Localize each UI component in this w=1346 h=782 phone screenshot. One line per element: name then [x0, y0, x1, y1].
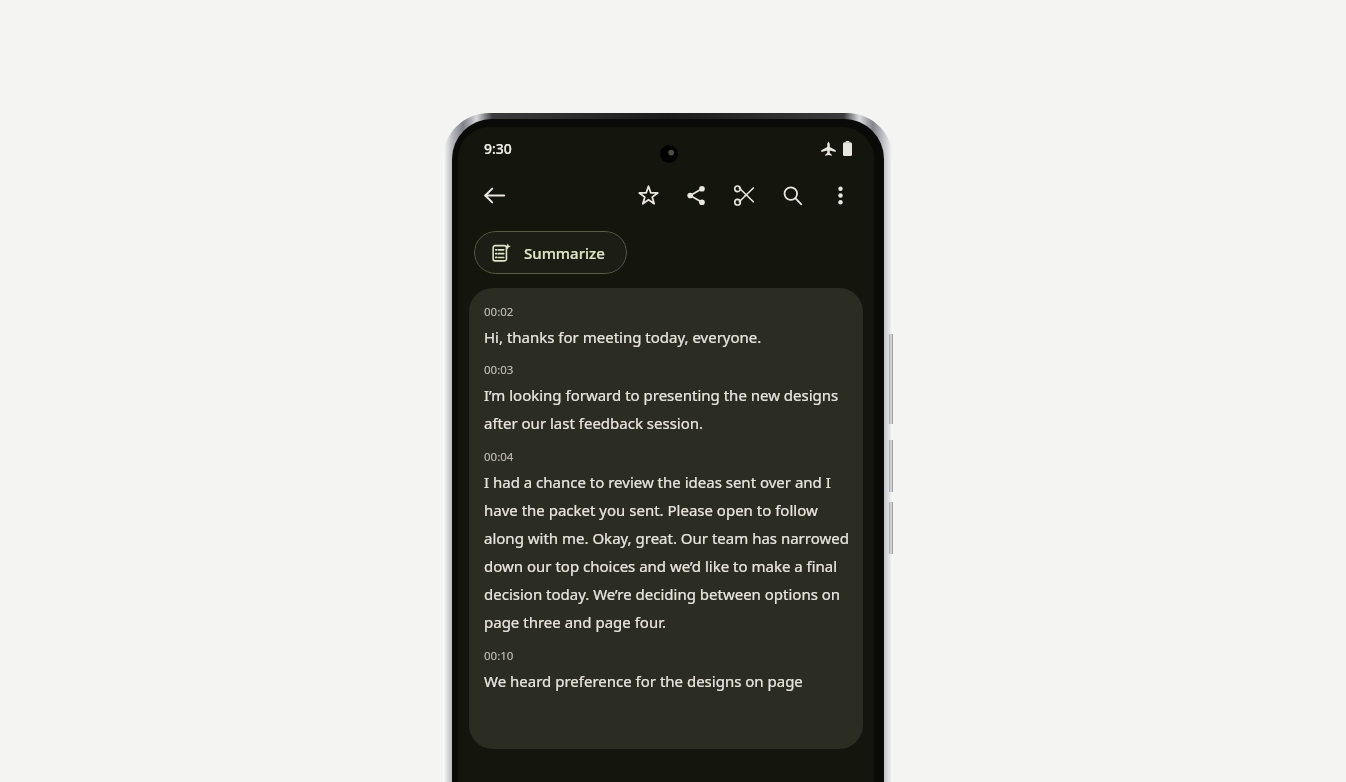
staticText: 00:10	[484, 648, 514, 664]
button[interactable]: Search	[768, 171, 816, 219]
staticText: 00:04	[484, 449, 514, 465]
button[interactable]: 00:02	[469, 288, 863, 749]
staticText: I had a chance to review the ideas sent …	[484, 472, 849, 633]
staticText: Hi, thanks for meeting today, everyone.	[484, 327, 762, 347]
staticText: We heard preference for the designs on p…	[484, 671, 803, 691]
staticText: Summarize	[524, 243, 605, 263]
staticText: I’m looking forward to presenting the ne…	[484, 385, 849, 434]
button[interactable]: Back	[472, 173, 516, 217]
staticText: 00:02	[484, 304, 514, 320]
button[interactable]: Star	[624, 171, 672, 219]
staticText: 00:03	[484, 362, 514, 378]
button[interactable]: Summarize	[474, 231, 627, 274]
button[interactable]: Cut	[720, 171, 768, 219]
button[interactable]: Share	[672, 171, 720, 219]
staticText: 9:30	[484, 139, 512, 158]
button[interactable]: More options	[816, 171, 864, 219]
